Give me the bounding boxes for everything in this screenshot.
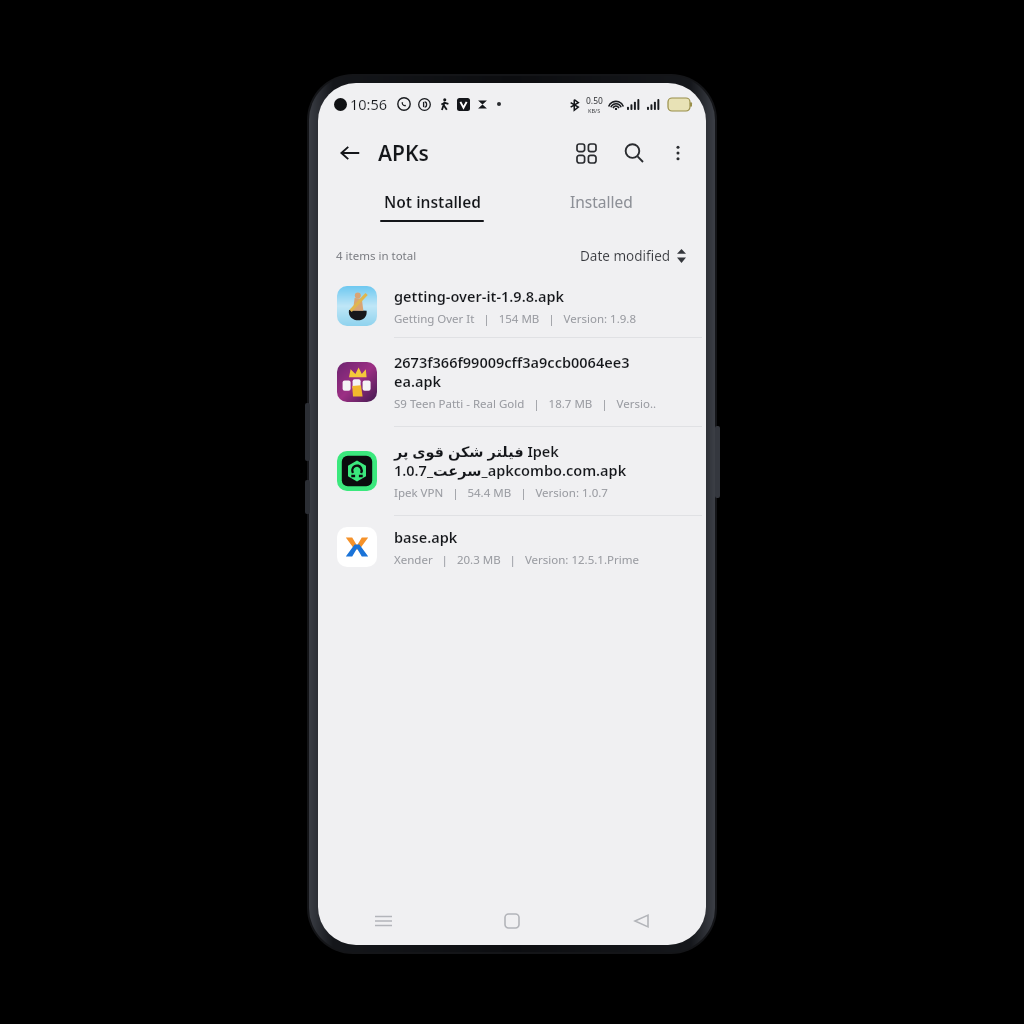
staticText: Xender | 20.3 MB | Version: 12.5.1.Prime <box>394 552 639 568</box>
staticText: Getting Over It | 154 MB | Version: 1.9.… <box>394 311 636 327</box>
button[interactable]: Back <box>330 133 370 173</box>
staticText: APKs <box>378 139 429 168</box>
staticText: 10:56 <box>350 94 388 114</box>
button[interactable]: Grid view <box>566 133 606 173</box>
button[interactable]: More options <box>658 133 698 173</box>
button[interactable]: Installed <box>562 190 641 223</box>
button[interactable]: Not installed <box>374 187 490 226</box>
button[interactable]: Recent apps <box>361 899 405 943</box>
button[interactable]: 2673f366f99009cff3a9ccb0064ee3 ea.apk <box>318 338 706 426</box>
staticText: 0.50 <box>586 95 603 107</box>
button[interactable]: Home <box>490 899 534 943</box>
button[interactable]: getting-over-it-1.9.8.apk <box>318 275 706 337</box>
button[interactable]: Date modified <box>578 245 688 267</box>
staticText: Not installed <box>384 191 481 212</box>
button[interactable]: فیلتر شکن قوی پر Ipek 1.0.7_سرعت_apkcomb… <box>318 427 706 515</box>
button[interactable]: base.apk <box>318 516 706 578</box>
staticText: S9 Teen Patti - Real Gold | 18.7 MB | Ve… <box>394 396 657 412</box>
button[interactable]: Back <box>619 899 663 943</box>
button[interactable]: Search <box>614 133 654 173</box>
staticText: Date modified <box>580 247 671 265</box>
staticText: getting-over-it-1.9.8.apk <box>394 286 565 306</box>
staticText: فیلتر شکن قوی پر Ipek 1.0.7_سرعت_apkcomb… <box>394 441 627 480</box>
staticText: 4 items in total <box>336 248 417 264</box>
staticText: KB/S <box>588 107 601 114</box>
staticText: Ipek VPN | 54.4 MB | Version: 1.0.7 <box>394 485 608 501</box>
staticText: 2673f366f99009cff3a9ccb0064ee3 ea.apk <box>394 352 630 391</box>
staticText: Installed <box>570 191 633 212</box>
staticText: base.apk <box>394 527 458 547</box>
